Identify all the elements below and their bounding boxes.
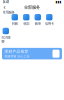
button[interactable]: 账单: [32, 14, 43, 26]
staticText: 全部服务: [24, 5, 40, 10]
button[interactable]: Back: [2, 4, 7, 10]
staticText: ‹: [3, 4, 5, 10]
button[interactable]: 转账: [9, 14, 20, 26]
button[interactable]: 信用卡: [43, 14, 55, 26]
staticText: 生活缴费: [1, 35, 10, 44]
staticText: 稳健增值 安心之选: [4, 54, 29, 58]
button[interactable]: 生活缴费: [0, 28, 11, 44]
staticText: 常用服务: [2, 10, 14, 14]
button[interactable]: 理财产品推荐: [2, 48, 62, 59]
staticText: 9:41: [2, 0, 9, 4]
staticText: 账单: [35, 21, 41, 26]
button[interactable]: 收款: [20, 14, 32, 26]
staticText: 理财产品推荐: [4, 49, 28, 54]
staticText: ▮▮▮: [55, 0, 61, 4]
staticText: 转账: [12, 21, 18, 26]
staticText: 收款: [23, 21, 29, 26]
staticText: 信用卡: [45, 21, 54, 26]
